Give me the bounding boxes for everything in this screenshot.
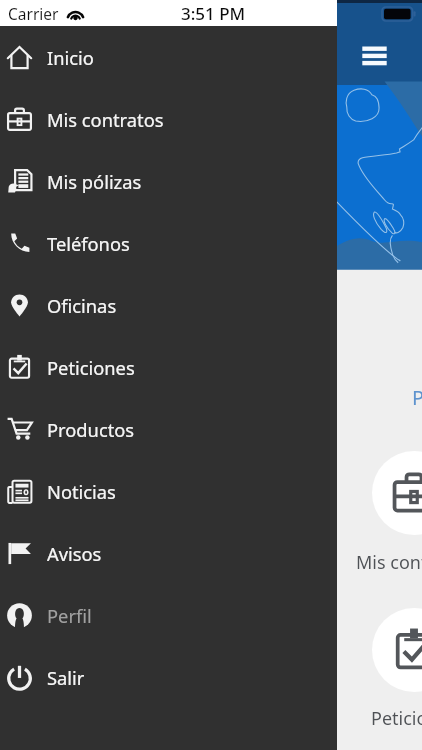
staticText: Principales xyxy=(412,384,422,411)
button[interactable]: Salir xyxy=(0,646,337,708)
staticText: Mis pólizas xyxy=(47,169,142,194)
staticText: Teléfonos xyxy=(47,231,130,256)
staticText: Peticiones xyxy=(47,355,135,380)
staticText: Mis contratos xyxy=(356,550,422,575)
button[interactable]: Inicio xyxy=(0,26,337,88)
button[interactable]: Oficinas xyxy=(0,274,337,336)
button[interactable]: Peticiones xyxy=(372,608,422,692)
button[interactable]: Open navigation menu xyxy=(354,39,390,73)
staticText: Mis contratos xyxy=(47,107,164,132)
button[interactable]: Perfil xyxy=(0,584,337,646)
button[interactable]: Mis contratos xyxy=(372,451,422,535)
staticText: Carrier xyxy=(8,3,59,24)
button[interactable]: Productos xyxy=(0,398,337,460)
button[interactable]: Noticias xyxy=(0,460,337,522)
staticText: Avisos xyxy=(47,541,102,566)
staticText: Salir xyxy=(47,665,85,690)
staticText: Noticias xyxy=(47,479,116,504)
staticText: Productos xyxy=(47,417,135,442)
button[interactable]: Teléfonos xyxy=(0,212,337,274)
button[interactable]: Mis contratos xyxy=(0,88,337,150)
button[interactable]: Avisos xyxy=(0,522,337,584)
staticText: Peticiones xyxy=(371,706,422,731)
staticText: Perfil xyxy=(47,603,92,628)
button[interactable]: Mis pólizas xyxy=(0,150,337,212)
staticText: 3:51 PM xyxy=(181,2,246,25)
staticText: Inicio xyxy=(47,45,94,70)
button[interactable]: Peticiones xyxy=(0,336,337,398)
staticText: Oficinas xyxy=(47,293,117,318)
